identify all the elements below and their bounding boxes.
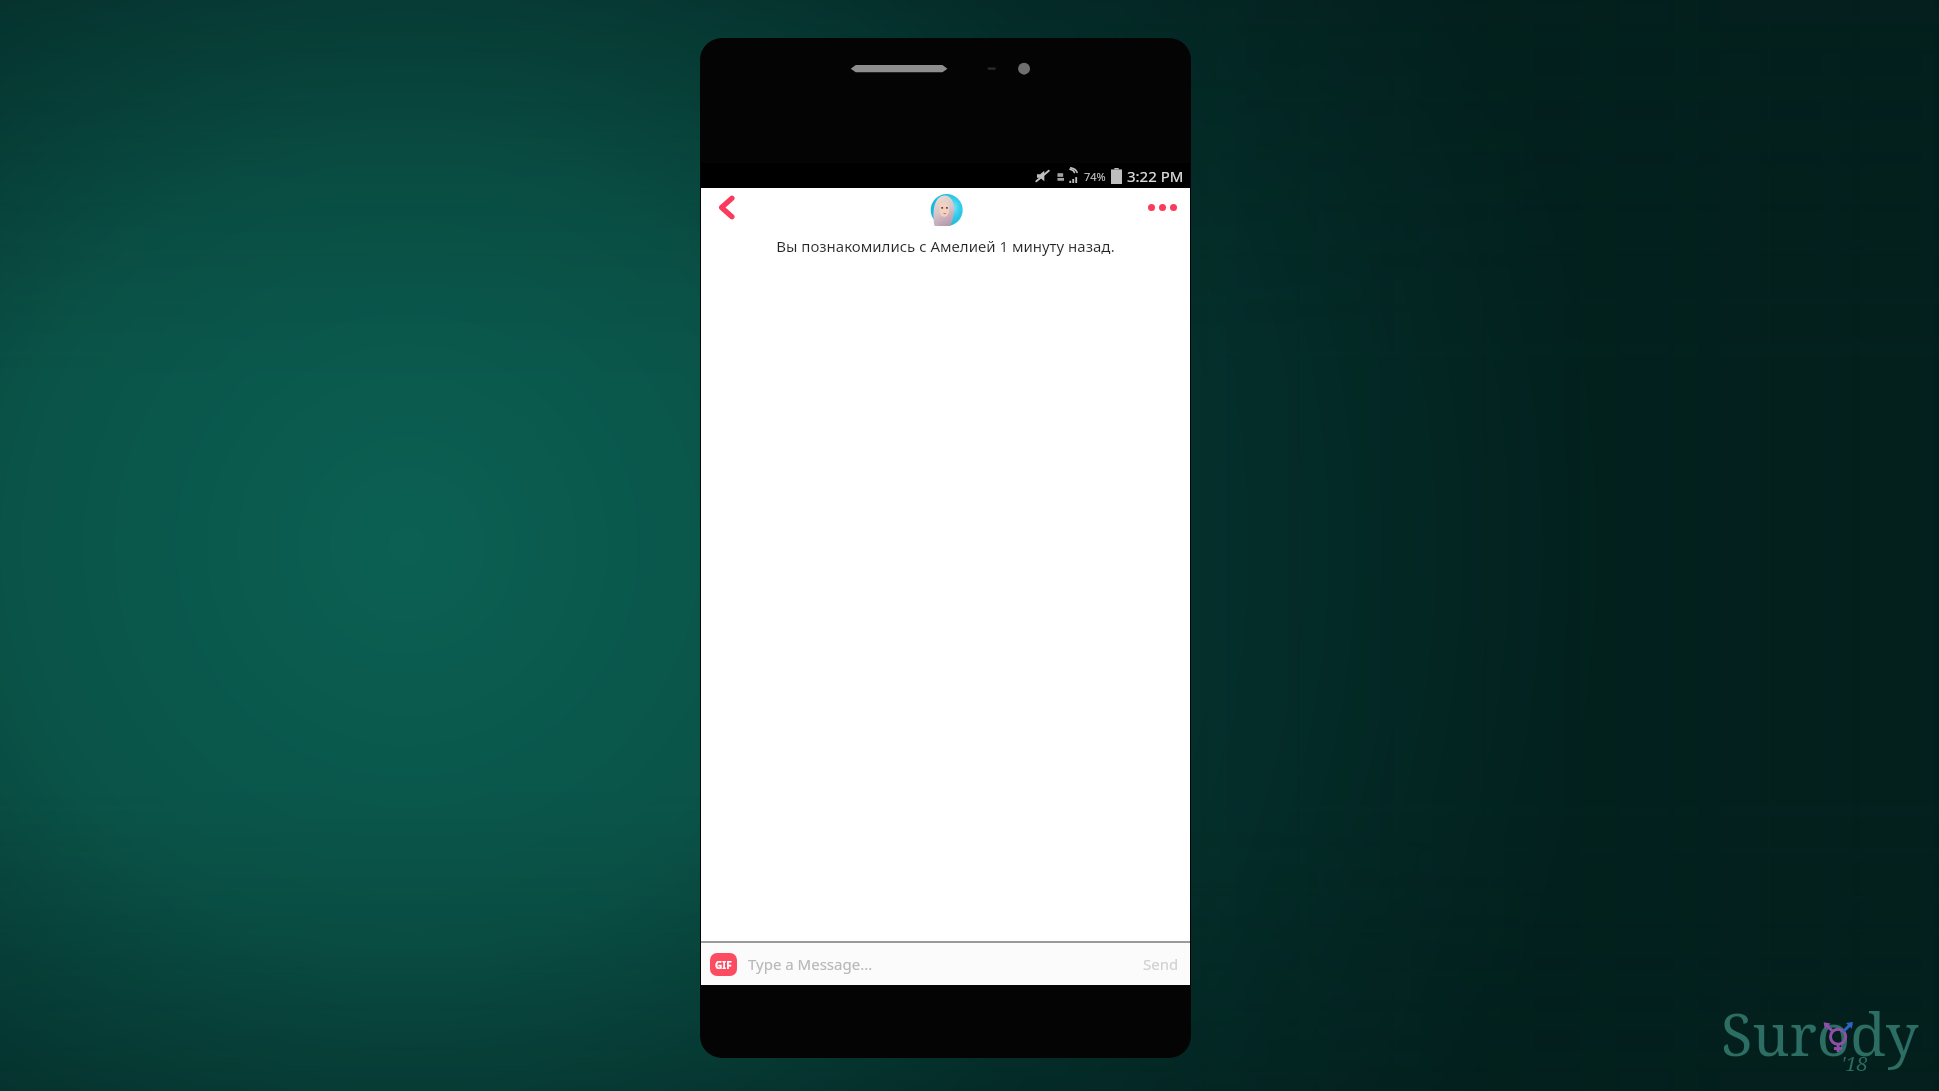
staticText: Type a Message... xyxy=(748,954,873,974)
staticText: 74% xyxy=(1084,169,1106,184)
staticText: Surody xyxy=(1721,994,1919,1073)
button[interactable]: Back xyxy=(709,190,743,224)
staticText: Вы познакомились с Амелией 1 минуту наза… xyxy=(776,236,1115,256)
button[interactable]: More options xyxy=(1144,192,1180,222)
button[interactable]: Send xyxy=(1143,947,1179,981)
staticText: '18 xyxy=(1841,1050,1868,1077)
staticText: Send xyxy=(1143,954,1179,974)
button[interactable]: Send a GIF xyxy=(710,953,737,976)
staticText: GIF xyxy=(715,958,732,972)
button[interactable]: Profile Amelia xyxy=(929,193,963,227)
button[interactable]: Type a Message... xyxy=(748,947,1137,981)
staticText: 3:22 PM xyxy=(1127,166,1184,186)
